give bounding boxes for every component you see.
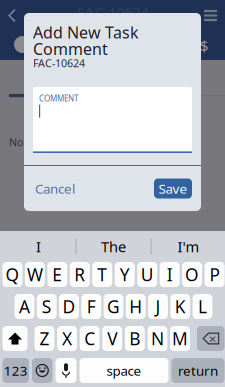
button[interactable]: Dictate [55,358,76,383]
button[interactable]: Q [2,262,22,287]
button[interactable]: return [171,358,224,383]
staticText: COMMENT [39,93,78,104]
staticText: K [175,295,186,318]
staticText: I'm [177,237,199,256]
staticText: Q [5,263,19,286]
staticText: A [19,295,30,318]
staticText: return [178,362,218,379]
button[interactable]: Menu [199,5,222,26]
staticText: space [106,362,141,379]
button[interactable]: H [126,294,146,319]
staticText: H [129,295,142,318]
button[interactable]: S [37,294,57,319]
staticText: × [209,330,217,347]
button[interactable]: L [193,294,212,319]
button[interactable]: T [92,262,112,287]
button[interactable]: U [137,262,157,287]
button[interactable]: X [57,326,77,351]
staticText: F [87,295,96,318]
staticText: V [107,327,117,350]
button[interactable]: Z [34,326,54,351]
button[interactable]: I'm [151,231,225,262]
button[interactable]: C [80,326,100,351]
staticText: S [42,295,52,318]
button[interactable]: The [76,231,150,262]
staticText: J [155,295,160,318]
button[interactable]: M [170,326,190,351]
staticText: B [129,327,140,350]
staticText: FAC-10624 [76,2,148,22]
staticText: U [141,263,154,286]
staticText: T [97,263,107,286]
staticText: N [151,327,164,350]
staticText: I [36,237,41,256]
button[interactable]: E [47,262,67,287]
staticText: P [210,263,220,286]
button[interactable]: J [148,294,168,319]
staticText: Save [158,180,187,197]
button[interactable]: Save [154,178,192,198]
staticText: E [52,263,62,286]
button[interactable]: Y [115,262,135,287]
button[interactable]: A [15,294,34,319]
button[interactable]: K [170,294,190,319]
staticText: C [84,327,95,350]
staticText: No [9,135,23,149]
staticText: X [62,327,72,350]
staticText: Add New Task [33,22,139,43]
staticText: D [62,295,75,318]
staticText: L [198,295,207,318]
staticText: O [185,263,199,286]
button[interactable]: W [25,262,45,287]
button[interactable]: G [104,294,123,319]
staticText: Cancel [35,180,75,197]
staticText: Comment [33,38,108,59]
button[interactable]: P [205,262,224,287]
button[interactable]: N [148,326,167,351]
button[interactable]: I [160,262,180,287]
button[interactable]: Emoji [32,358,52,383]
button[interactable]: I [1,231,75,262]
staticText: G [107,295,120,318]
button[interactable]: B [125,326,145,351]
staticText: 123 [4,362,28,379]
staticText: Z [39,327,49,350]
button[interactable]: space [79,358,168,383]
staticText: Y [120,263,130,286]
staticText: FAC-10624 [33,56,85,70]
staticText: W [27,263,43,286]
button[interactable]: R [70,262,90,287]
button[interactable]: V [102,326,122,351]
button[interactable]: Cancel [24,172,86,205]
staticText: The [101,237,126,256]
staticText: M [172,327,188,350]
button[interactable]: D [59,294,79,319]
staticText: R [74,263,85,286]
button[interactable]: O [182,262,202,287]
button[interactable]: Shift [2,326,27,351]
staticText: I [167,263,173,286]
button[interactable]: F [81,294,101,319]
staticText: $ [200,36,208,55]
button[interactable]: Delete [197,326,224,351]
button[interactable]: Back [3,4,21,27]
button[interactable]: 123 [2,358,29,383]
